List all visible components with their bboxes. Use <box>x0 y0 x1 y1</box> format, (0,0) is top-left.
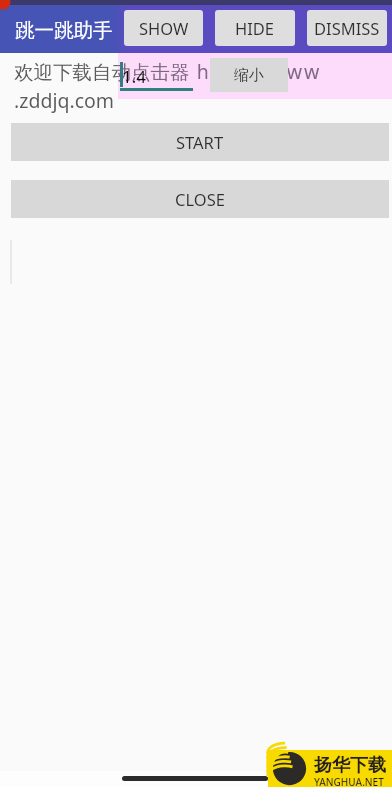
staticText: YANGHUA.NET <box>314 775 384 787</box>
button[interactable]: START <box>11 123 389 161</box>
button[interactable]: HIDE <box>216 11 294 45</box>
staticText: 1.4 <box>122 65 147 88</box>
staticText: SHOW <box>139 17 189 39</box>
button[interactable]: DISMISS <box>308 11 386 45</box>
staticText: 扬华下载 <box>314 754 386 777</box>
staticText: START <box>176 131 224 153</box>
button[interactable]: CLOSE <box>11 180 389 218</box>
staticText: 欢迎下载自动点击器 http://www .zddjq.com <box>118 58 322 99</box>
staticText: DISMISS <box>314 17 380 39</box>
staticText: CLOSE <box>175 188 225 210</box>
staticText: 跳一跳助手 <box>15 18 113 43</box>
button[interactable]: 缩小 <box>210 58 288 92</box>
staticText: HIDE <box>235 17 275 39</box>
staticText: 缩小 <box>234 66 264 85</box>
button[interactable]: SHOW <box>125 11 202 45</box>
staticText: 欢迎下载自动点击器 http://www .zddjq.com <box>14 58 322 114</box>
